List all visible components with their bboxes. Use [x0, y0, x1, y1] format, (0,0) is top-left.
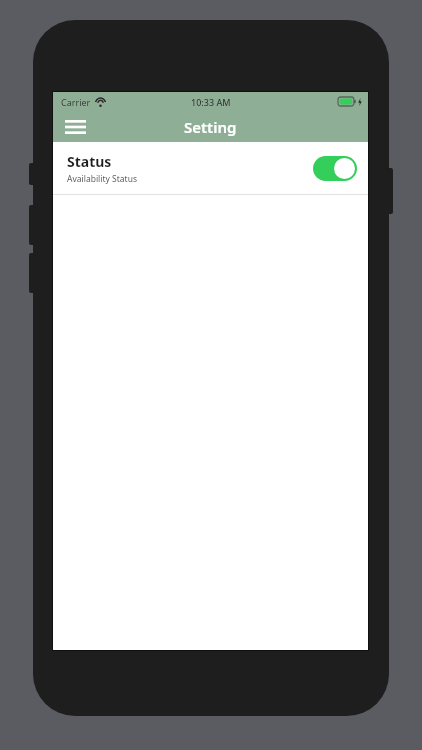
button[interactable]: Availability status toggle [313, 156, 357, 181]
button[interactable]: Open navigation menu [60, 112, 90, 142]
staticText: Carrier [61, 96, 91, 108]
button[interactable]: Status [53, 142, 368, 194]
staticText: Setting [184, 117, 237, 137]
staticText: 10:33 AM [191, 96, 231, 108]
staticText: Status [67, 152, 112, 171]
staticText: Availability Status [67, 173, 137, 185]
